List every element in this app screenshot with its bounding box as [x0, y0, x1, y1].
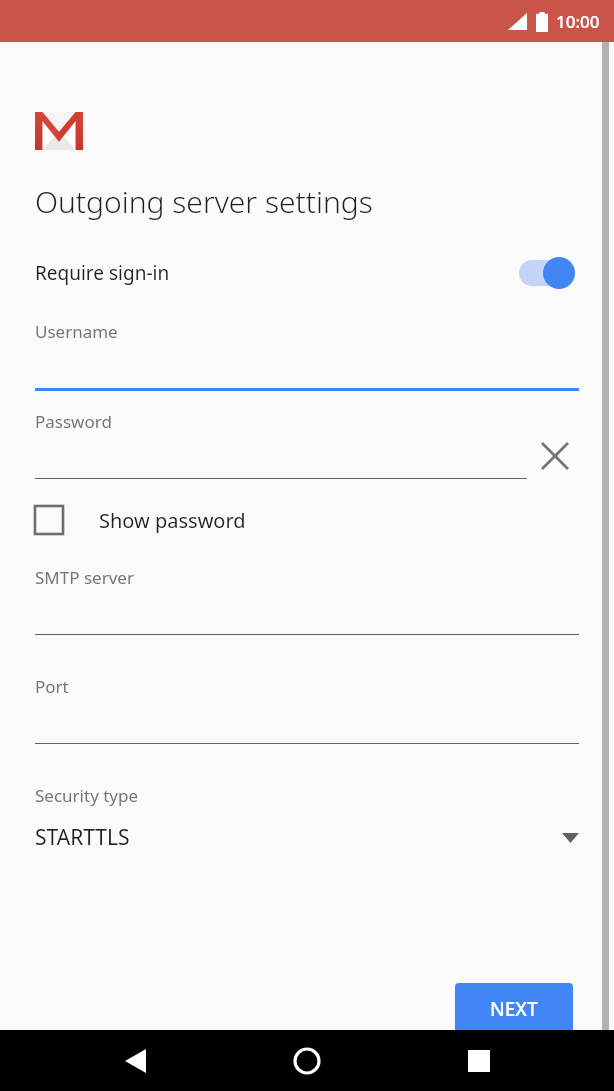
- button[interactable]: Clear password: [531, 432, 579, 480]
- button[interactable]: NEXT: [455, 983, 573, 1039]
- staticText: Port: [35, 675, 69, 698]
- staticText: SMTP server: [35, 566, 134, 589]
- button[interactable]: Security type: [35, 784, 579, 852]
- staticText: Outgoing server settings: [35, 181, 373, 222]
- button[interactable]: Port: [35, 675, 579, 744]
- button[interactable]: SMTP server: [35, 566, 579, 635]
- button[interactable]: Show password: [35, 496, 579, 544]
- staticText: Require sign-in: [35, 260, 170, 286]
- button[interactable]: Recent apps: [449, 1031, 509, 1091]
- button[interactable]: Username: [35, 320, 579, 391]
- button[interactable]: Require sign-in: [35, 251, 579, 295]
- button[interactable]: Back: [105, 1031, 165, 1091]
- button[interactable]: Home: [277, 1031, 337, 1091]
- staticText: 10:00: [556, 10, 600, 33]
- staticText: STARTTLS: [35, 823, 130, 852]
- staticText: NEXT: [490, 996, 538, 1022]
- staticText: Username: [35, 320, 118, 343]
- staticText: Password: [35, 410, 112, 433]
- staticText: Show password: [99, 507, 246, 534]
- staticText: Security type: [35, 784, 139, 807]
- button[interactable]: Require sign-in toggle: [517, 254, 579, 292]
